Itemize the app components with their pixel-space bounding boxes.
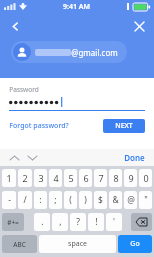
button[interactable]: Backspace — [131, 213, 152, 231]
staticText: 9:41 AM — [63, 2, 90, 12]
staticText: $ — [98, 194, 103, 206]
staticText: 7 — [98, 172, 104, 184]
staticText: ABC — [13, 240, 26, 249]
staticText: ) — [84, 194, 87, 206]
button[interactable]: 2 — [18, 169, 32, 187]
button[interactable]: Close — [128, 15, 150, 37]
button[interactable]: 9 — [124, 169, 137, 187]
button[interactable]: ? — [70, 213, 86, 231]
button[interactable]: 7 — [94, 169, 107, 187]
staticText: - — [8, 194, 11, 206]
button[interactable]: 4 — [49, 169, 62, 187]
staticText: 5 — [68, 172, 74, 184]
button[interactable]: ( — [64, 191, 77, 209]
staticText: 2 — [22, 172, 28, 184]
button[interactable]: Forgot password? — [9, 119, 69, 133]
button[interactable]: Next field — [25, 150, 39, 165]
staticText: 1 — [6, 172, 12, 184]
staticText: / — [23, 194, 27, 206]
button[interactable]: NEXT — [103, 119, 145, 133]
button[interactable]: 0 — [139, 169, 152, 187]
button[interactable]: Go — [118, 235, 152, 253]
staticText: 0 — [143, 172, 149, 184]
staticText: ( — [69, 194, 72, 206]
staticText: #+= — [7, 218, 19, 227]
staticText: @gmail.com — [71, 47, 118, 58]
button[interactable]: ! — [88, 213, 104, 231]
staticText: 8 — [113, 172, 119, 184]
button[interactable]: @gmail.com — [11, 41, 127, 63]
staticText: 9 — [128, 172, 134, 184]
staticText: 6 — [83, 172, 89, 184]
staticText: , — [59, 216, 62, 228]
button[interactable]: ; — [49, 191, 62, 209]
button[interactable]: & — [109, 191, 122, 209]
staticText: Done — [124, 152, 145, 163]
staticText: ' — [113, 216, 115, 228]
button[interactable]: space — [39, 235, 116, 253]
staticText: . — [41, 216, 44, 228]
staticText: Password — [9, 85, 39, 94]
button[interactable]: , — [52, 213, 68, 231]
staticText: Go — [130, 239, 140, 249]
staticText: @ — [127, 194, 135, 206]
button[interactable]: : — [34, 191, 47, 209]
button[interactable]: $ — [94, 191, 107, 209]
button[interactable]: #+= — [2, 213, 24, 231]
staticText: NEXT — [115, 121, 133, 131]
button[interactable]: . — [34, 213, 50, 231]
button[interactable]: @ — [124, 191, 137, 209]
staticText: : — [39, 194, 42, 206]
button[interactable]: Back — [4, 15, 26, 37]
button[interactable]: Previous field — [7, 150, 21, 165]
button[interactable]: / — [18, 191, 32, 209]
staticText: 3 — [38, 172, 44, 184]
button[interactable]: - — [2, 191, 16, 209]
staticText: " — [144, 194, 148, 206]
button[interactable]: ' — [106, 213, 122, 231]
staticText: ! — [95, 216, 98, 228]
button[interactable]: ) — [79, 191, 92, 209]
button[interactable]: 8 — [109, 169, 122, 187]
staticText: ? — [76, 216, 80, 228]
button[interactable]: Done — [122, 150, 147, 165]
button[interactable]: ABC — [2, 235, 37, 253]
staticText: & — [112, 194, 119, 206]
staticText: Forgot password? — [9, 121, 69, 131]
button[interactable]: " — [139, 191, 152, 209]
staticText: 4 — [53, 172, 59, 184]
button[interactable]: 5 — [64, 169, 77, 187]
button[interactable]: 6 — [79, 169, 92, 187]
button[interactable]: 3 — [34, 169, 47, 187]
staticText: space — [68, 239, 87, 249]
button[interactable]: 1 — [2, 169, 16, 187]
staticText: ; — [54, 194, 57, 206]
